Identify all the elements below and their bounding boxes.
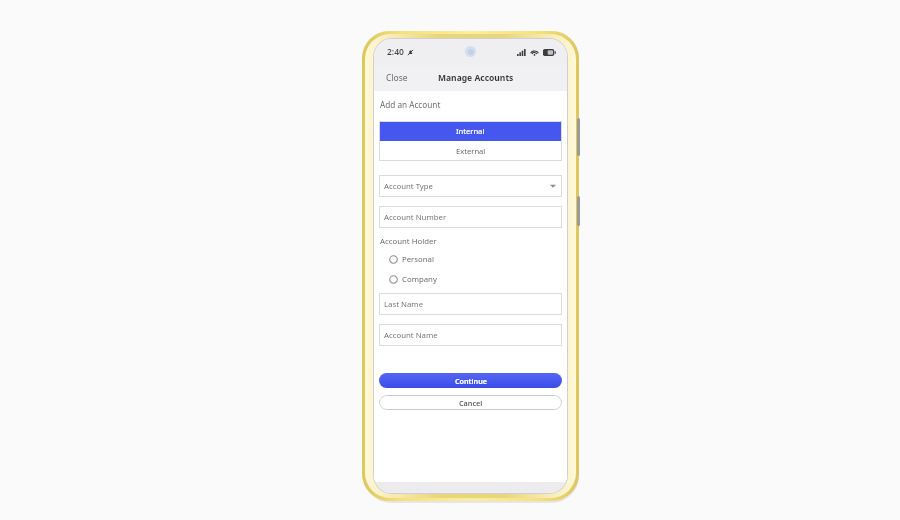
staticText: Close (386, 72, 408, 84)
button[interactable]: Internal (379, 121, 562, 141)
staticText: Account Name (384, 330, 438, 341)
button[interactable]: Close (374, 65, 420, 91)
button[interactable]: Last Name (379, 293, 562, 315)
staticText: Company (402, 274, 437, 285)
button[interactable]: Account Name (379, 324, 562, 346)
button[interactable]: Account Type (379, 175, 562, 197)
staticText: Account Number (384, 212, 447, 223)
button[interactable]: Cancel (379, 395, 562, 410)
button[interactable]: Company (379, 272, 562, 286)
button[interactable]: External (379, 141, 562, 161)
staticText: External (456, 146, 486, 156)
staticText: Last Name (384, 299, 424, 310)
button[interactable]: Account Number (379, 206, 562, 228)
staticText: Manage Accounts (438, 72, 514, 84)
staticText: Account Type (384, 181, 434, 192)
staticText: Account Holder (380, 236, 437, 247)
button[interactable]: Personal (379, 252, 562, 266)
staticText: Continue (455, 376, 487, 386)
staticText: 2:40 (387, 46, 404, 58)
button[interactable]: Continue (379, 373, 562, 388)
staticText: Add an Account (380, 99, 441, 110)
other: Volume (577, 118, 580, 156)
staticText: Internal (456, 126, 485, 136)
other: Power (577, 196, 580, 226)
staticText: Personal (402, 254, 434, 265)
staticText: Cancel (459, 398, 483, 408)
